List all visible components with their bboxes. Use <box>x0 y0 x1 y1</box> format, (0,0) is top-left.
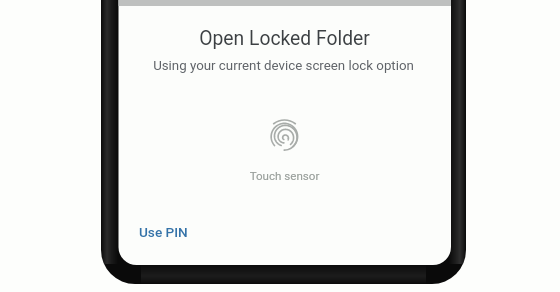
staticText: Using your current device screen lock op… <box>117 58 450 74</box>
other: Fingerprint sensor <box>271 120 298 151</box>
button[interactable]: Use PIN <box>128 218 199 246</box>
staticText: Open Locked Folder <box>118 27 451 50</box>
staticText: Touch sensor <box>118 169 451 183</box>
staticText: Use PIN <box>139 224 188 240</box>
